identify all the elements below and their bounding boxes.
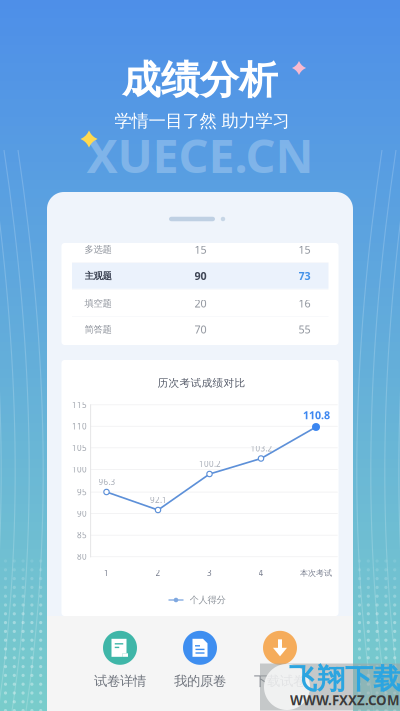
staticText: 下载试卷 xyxy=(254,673,306,689)
button[interactable]: 填空题 xyxy=(72,290,328,316)
staticText: 100.2 xyxy=(199,459,221,469)
staticText: 115 xyxy=(72,399,87,410)
staticText: 简答题 xyxy=(84,324,111,335)
staticText: 110.8 xyxy=(303,408,330,422)
staticText: 15 xyxy=(298,242,310,257)
staticText: 55 xyxy=(298,322,310,336)
staticText: 95 xyxy=(77,487,87,497)
button[interactable]: 我的原卷 xyxy=(160,631,240,689)
staticText: 20 xyxy=(194,296,206,310)
staticText: 主观题 xyxy=(84,270,111,282)
staticText: 填空题 xyxy=(84,298,111,309)
button[interactable]: 简答题 xyxy=(72,316,328,342)
staticText: 历次考试成绩对比 xyxy=(157,376,245,389)
staticText: XUECE.CN xyxy=(86,124,313,186)
staticText: 我的原卷 xyxy=(174,673,226,689)
staticText: WWW.FXXZ.COM xyxy=(290,691,400,709)
button[interactable]: 试卷详情 xyxy=(80,631,160,689)
staticText: 90 xyxy=(194,269,206,283)
staticText: 96.3 xyxy=(98,477,115,487)
staticText: 3 xyxy=(207,568,212,578)
staticText: 多选题 xyxy=(84,244,111,255)
staticText: 100 xyxy=(72,464,87,475)
staticText: 85 xyxy=(77,530,87,540)
staticText: 70 xyxy=(194,322,206,336)
staticText: 4 xyxy=(258,568,263,578)
staticText: 110 xyxy=(72,421,87,432)
button[interactable]: 主观题 xyxy=(72,263,328,289)
staticText: 15 xyxy=(194,242,206,257)
staticText: 成绩分析 xyxy=(122,56,278,104)
staticText: 个人得分 xyxy=(189,594,225,606)
button[interactable]: 下载试卷 xyxy=(240,631,320,689)
staticText: 90 xyxy=(77,508,87,519)
staticText: 本次考试 xyxy=(300,568,332,578)
staticText: 105 xyxy=(72,442,87,453)
staticText: 学情一目了然 助力学习 xyxy=(114,110,289,132)
staticText: 92.1 xyxy=(150,495,167,505)
staticText: 16 xyxy=(298,296,310,310)
button[interactable]: 多选题 xyxy=(72,236,328,262)
staticText: 2 xyxy=(155,568,160,578)
staticText: 1 xyxy=(104,568,109,578)
staticText: 试卷详情 xyxy=(94,673,146,689)
staticText: 103.2 xyxy=(250,443,272,454)
staticText: 80 xyxy=(77,551,87,562)
staticText: 飞翔下载 xyxy=(289,662,400,696)
staticText: 73 xyxy=(298,269,310,283)
